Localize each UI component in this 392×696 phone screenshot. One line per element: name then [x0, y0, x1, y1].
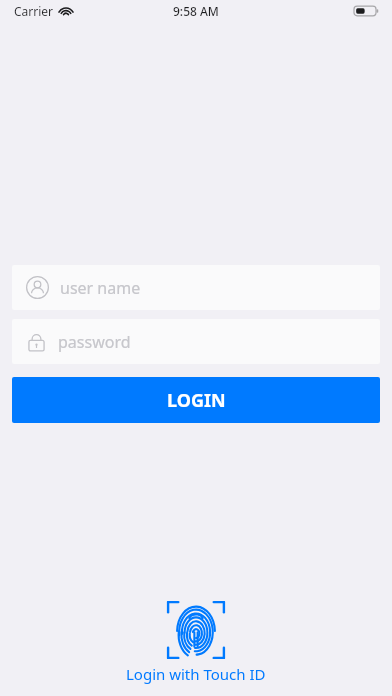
staticText: user name — [60, 277, 141, 299]
staticText: password — [58, 331, 131, 353]
staticText: LOGIN — [167, 388, 226, 413]
button[interactable]: Login with Touch ID — [102, 598, 290, 686]
button[interactable]: LOGIN — [12, 377, 380, 423]
button[interactable]: user name — [12, 265, 380, 310]
other: Login with Touch ID — [166, 600, 226, 660]
staticText: Carrier — [14, 3, 54, 19]
staticText: Login with Touch ID — [126, 664, 266, 684]
staticText: 9:58 AM — [173, 3, 219, 19]
button[interactable]: password — [12, 319, 380, 364]
